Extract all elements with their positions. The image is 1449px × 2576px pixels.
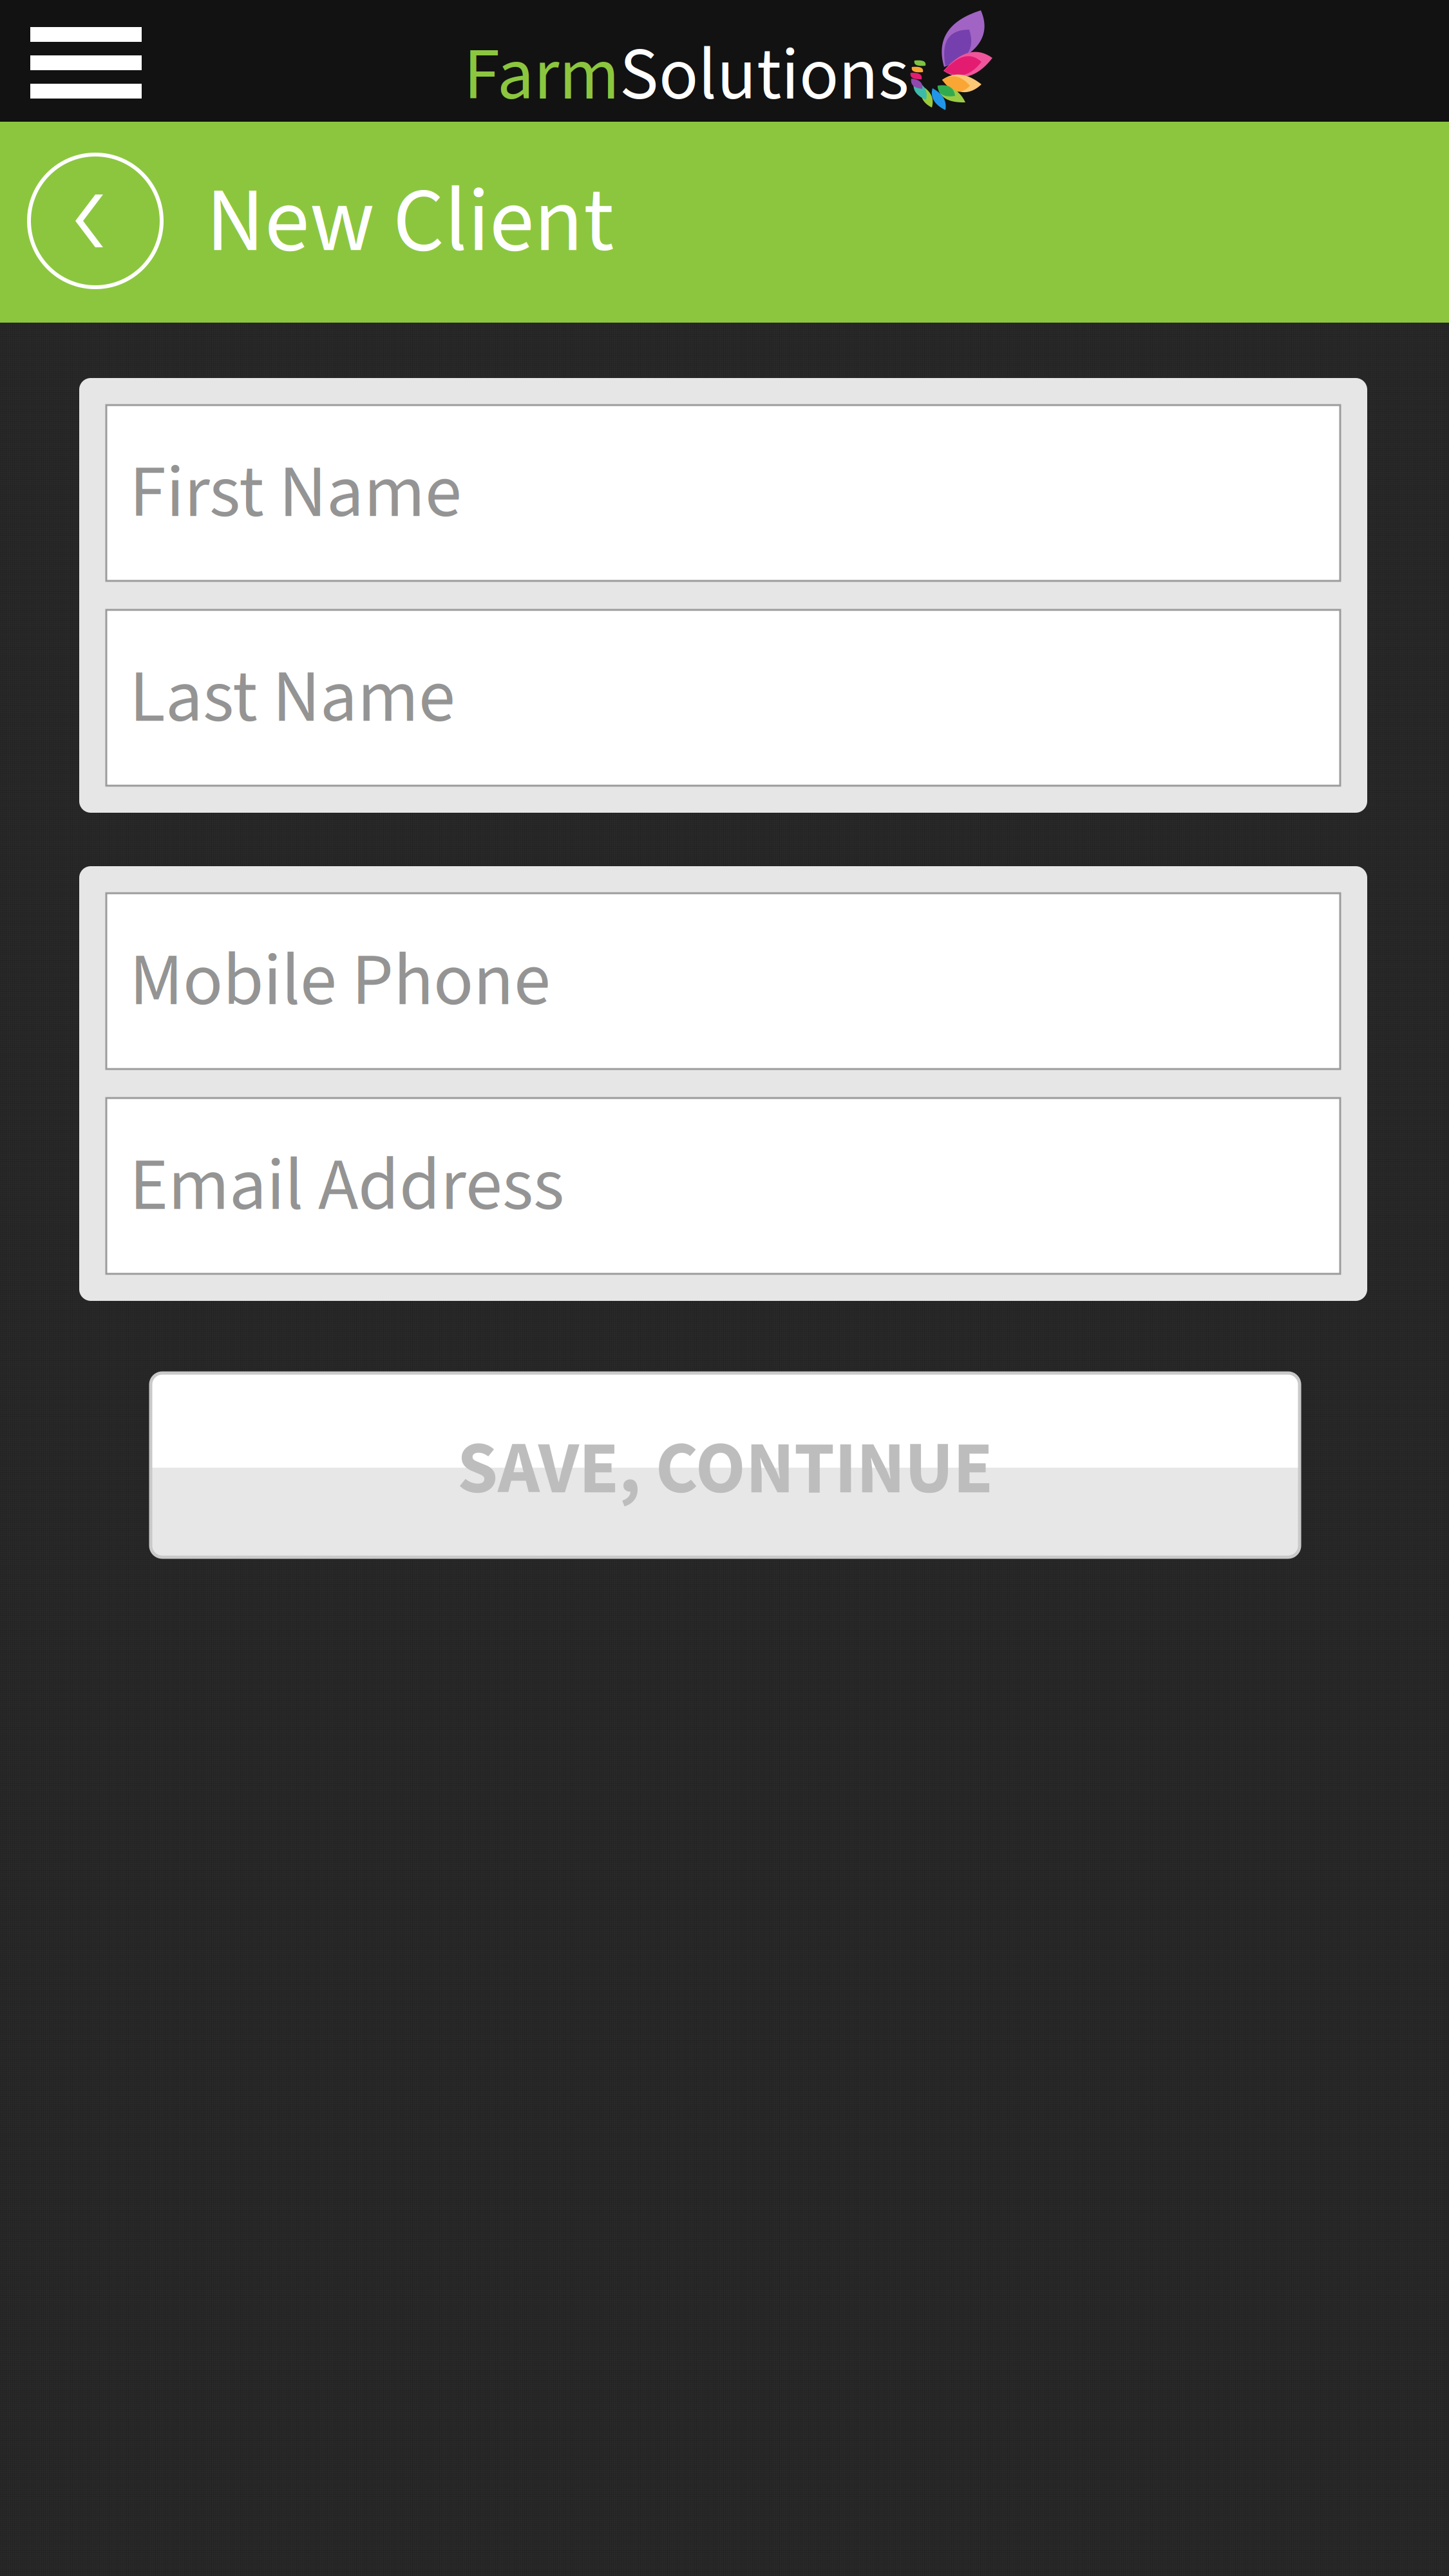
button[interactable]: Back xyxy=(0,118,206,326)
staticText: First Name xyxy=(129,440,462,546)
staticText: Farm xyxy=(464,24,620,128)
button[interactable]: Menu xyxy=(0,0,172,122)
staticText: New Client xyxy=(206,158,614,286)
staticText: Last Name xyxy=(129,645,455,750)
staticText: Mobile Phone xyxy=(129,929,551,1034)
staticText: Email Address xyxy=(129,1133,564,1239)
staticText: SAVE, CONTINUE xyxy=(457,1418,993,1522)
button[interactable]: SAVE, CONTINUE xyxy=(79,1373,1367,1557)
staticText: Solutions xyxy=(620,24,909,128)
